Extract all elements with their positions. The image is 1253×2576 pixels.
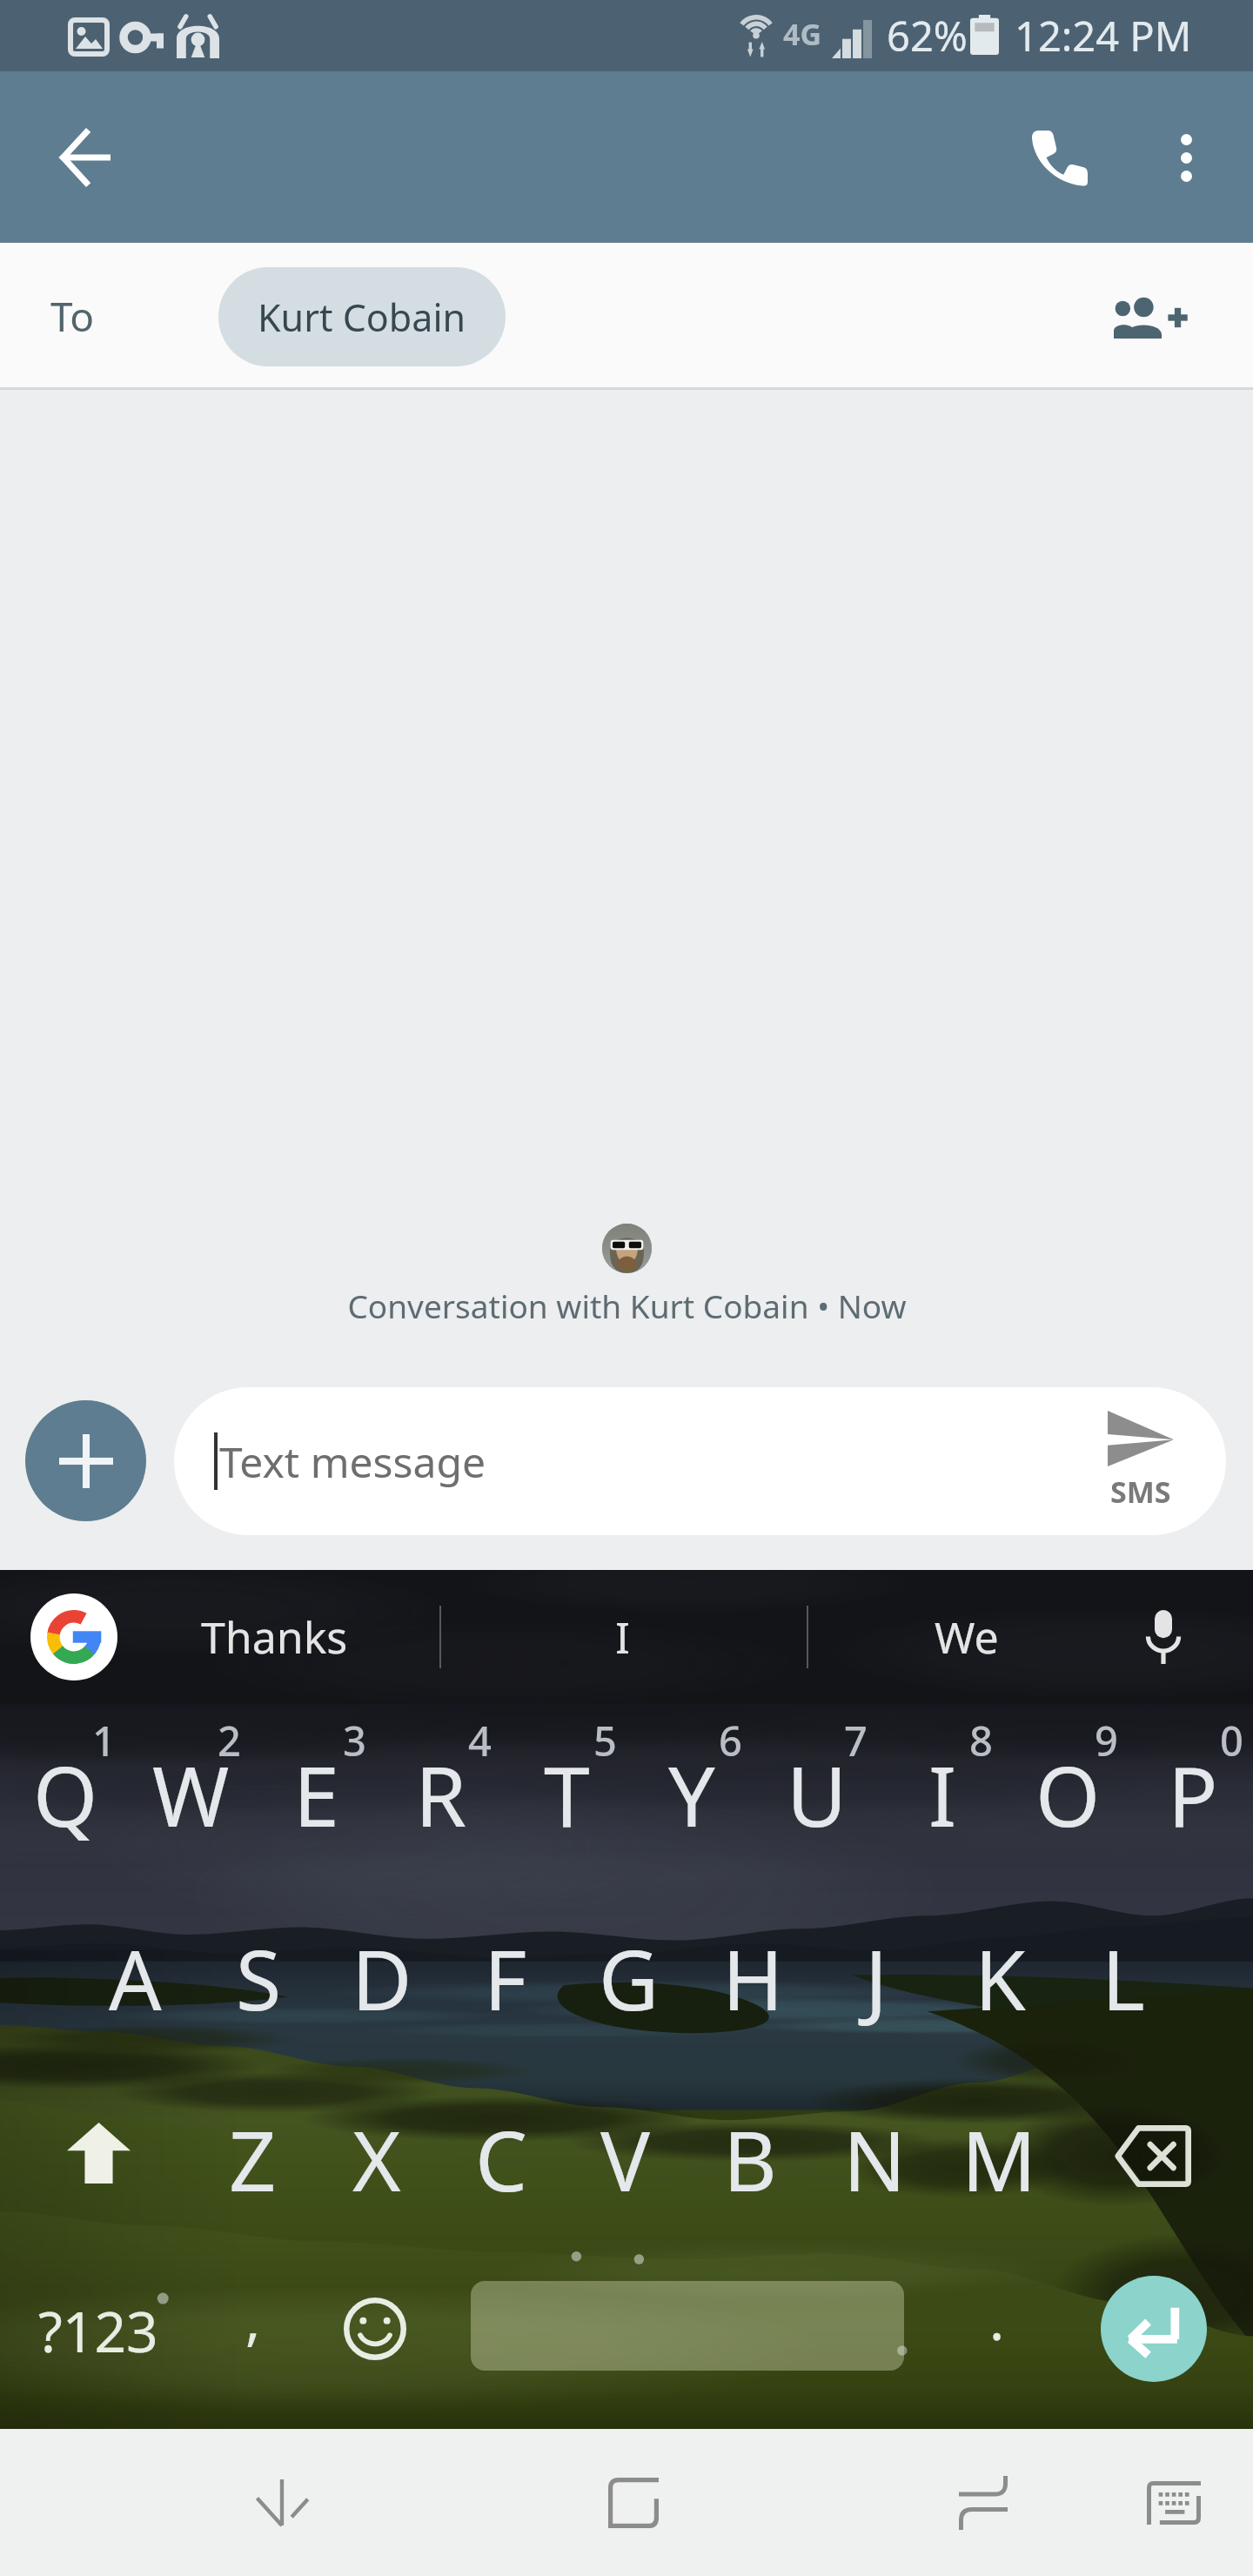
staticText: Conversation with Kurt Cobain • Now — [347, 1284, 907, 1327]
button[interactable]: More options — [1134, 105, 1238, 210]
staticText: Z — [229, 2103, 277, 2215]
button[interactable]: We — [870, 1570, 1063, 1704]
button[interactable]: Enter — [1101, 2276, 1207, 2382]
staticText: U — [787, 1738, 848, 1850]
staticText: Q — [33, 1738, 98, 1850]
staticText: G — [599, 1922, 660, 2034]
staticText: 8 — [969, 1713, 993, 1763]
staticText: , — [245, 2281, 261, 2357]
button[interactable]: K — [937, 1895, 1062, 2060]
staticText: Kurt Cobain — [258, 292, 466, 343]
staticText: S — [236, 1922, 282, 2034]
button[interactable]: , — [192, 2236, 314, 2401]
button[interactable]: ?123 — [11, 2248, 185, 2413]
staticText: X — [352, 2103, 401, 2215]
staticText: L — [1102, 1922, 1145, 2034]
staticText: B — [723, 2103, 777, 2215]
button[interactable]: Kurt Cobain — [218, 267, 506, 366]
button[interactable]: Voice input — [1107, 1580, 1220, 1694]
staticText: 5 — [593, 1713, 617, 1763]
button[interactable]: O — [1005, 1711, 1130, 1876]
button[interactable]: Call — [1002, 101, 1116, 214]
button[interactable]: M — [936, 2076, 1062, 2241]
staticText: To — [50, 289, 95, 344]
button[interactable]: U — [754, 1711, 880, 1876]
staticText: 9 — [1095, 1713, 1118, 1763]
button[interactable]: T — [504, 1711, 629, 1876]
button[interactable]: B — [687, 2076, 813, 2241]
staticText: J — [865, 1922, 888, 2034]
staticText: SMS — [1110, 1472, 1171, 1512]
staticText: 1 — [92, 1713, 116, 1763]
staticText: We — [935, 1607, 999, 1667]
button[interactable]: G — [566, 1895, 692, 2060]
staticText: 3 — [343, 1713, 366, 1763]
button[interactable]: I — [880, 1711, 1005, 1876]
staticText: 62% — [887, 8, 968, 64]
button[interactable]: H — [690, 1895, 815, 2060]
button[interactable]: Thanks — [165, 1570, 383, 1704]
button[interactable]: Text message — [174, 1387, 1226, 1535]
button[interactable]: Google — [7, 1570, 141, 1704]
staticText: O — [1035, 1738, 1101, 1850]
button[interactable]: Shift — [11, 2070, 185, 2236]
button[interactable]: Back — [29, 101, 142, 214]
button[interactable]: . — [936, 2236, 1058, 2401]
button[interactable]: Change keyboard — [1109, 2438, 1239, 2568]
button[interactable]: I — [544, 1570, 700, 1704]
button[interactable]: Add people — [1095, 260, 1208, 373]
staticText: 6 — [719, 1713, 742, 1763]
staticText: 12:24 PM — [1015, 8, 1192, 64]
staticText: T — [544, 1738, 590, 1850]
button[interactable]: Backspace — [1065, 2073, 1239, 2238]
button[interactable]: V — [563, 2076, 688, 2241]
button[interactable]: D — [319, 1895, 445, 2060]
button[interactable]: Recents — [918, 2438, 1049, 2568]
button[interactable]: C — [439, 2076, 564, 2241]
button[interactable]: J — [814, 1895, 939, 2060]
staticText: K — [975, 1922, 1026, 2034]
button[interactable]: Home — [568, 2438, 699, 2568]
button[interactable]: P — [1130, 1711, 1253, 1876]
staticText: 4G — [783, 14, 822, 54]
button[interactable]: S — [196, 1895, 321, 2060]
button[interactable]: Space — [471, 2281, 904, 2371]
button[interactable]: R — [379, 1711, 504, 1876]
staticText: F — [484, 1922, 527, 2034]
button[interactable]: Add attachment — [25, 1400, 146, 1521]
staticText: W — [152, 1738, 230, 1850]
staticText: Thanks — [201, 1607, 348, 1667]
staticText: V — [600, 2103, 651, 2215]
staticText: 7 — [844, 1713, 868, 1763]
button[interactable]: A — [72, 1895, 198, 2060]
staticText: M — [962, 2103, 1037, 2215]
button[interactable]: L — [1061, 1895, 1186, 2060]
staticText: H — [722, 1922, 784, 2034]
staticText: Text message — [219, 1433, 486, 1490]
button[interactable]: F — [443, 1895, 568, 2060]
staticText: 4 — [468, 1713, 492, 1763]
button[interactable]: Emoji — [305, 2251, 445, 2407]
staticText: C — [475, 2103, 528, 2215]
staticText: 0 — [1220, 1713, 1243, 1763]
staticText: . — [989, 2281, 1005, 2357]
button[interactable]: N — [812, 2076, 937, 2241]
button[interactable]: Q — [3, 1711, 128, 1876]
staticText: P — [1168, 1738, 1218, 1850]
staticText: A — [109, 1922, 162, 2034]
staticText: E — [293, 1738, 339, 1850]
staticText: 2 — [218, 1713, 241, 1763]
staticText: N — [843, 2103, 907, 2215]
staticText: I — [615, 1607, 630, 1667]
button[interactable]: Y — [629, 1711, 754, 1876]
button[interactable]: E — [253, 1711, 379, 1876]
staticText: I — [928, 1738, 957, 1850]
button[interactable]: X — [314, 2076, 439, 2241]
button[interactable]: W — [128, 1711, 253, 1876]
button[interactable]: Z — [190, 2076, 315, 2241]
staticText: D — [352, 1922, 412, 2034]
staticText: Y — [668, 1738, 715, 1850]
staticText: R — [415, 1738, 467, 1850]
staticText: ?123 — [38, 2293, 158, 2369]
button[interactable]: Hide keyboard — [217, 2438, 347, 2568]
